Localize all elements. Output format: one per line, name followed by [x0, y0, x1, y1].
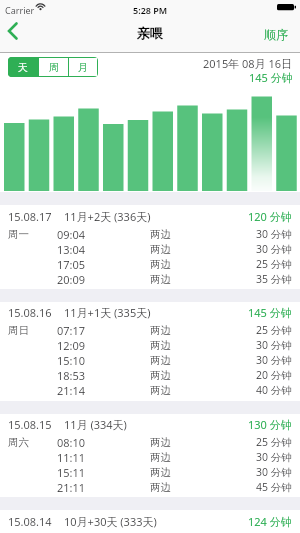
staticText: 145 分钟: [249, 70, 293, 85]
button[interactable]: [0, 353, 300, 368]
staticText: 两边: [150, 273, 171, 286]
staticText: 15.08.16: [8, 305, 52, 320]
button[interactable]: [0, 480, 300, 495]
staticText: 两边: [150, 228, 171, 241]
button[interactable]: [0, 450, 300, 465]
button[interactable]: [0, 368, 300, 383]
staticText: 30 分钟: [256, 242, 292, 256]
staticText: 20 分钟: [256, 368, 292, 382]
staticText: 30 分钟: [256, 338, 292, 352]
staticText: 两边: [150, 243, 171, 256]
staticText: 两边: [150, 466, 171, 479]
staticText: 两边: [150, 339, 171, 352]
staticText: 09:04: [57, 227, 86, 242]
staticText: 124 分钟: [248, 514, 292, 529]
staticText: 天: [18, 61, 28, 74]
staticText: 周六: [8, 436, 29, 449]
staticText: 12:09: [57, 338, 86, 353]
staticText: 两边: [150, 384, 171, 397]
staticText: 11月+1天 (335天): [64, 305, 151, 320]
staticText: 30 分钟: [256, 227, 292, 241]
staticText: 30 分钟: [256, 465, 292, 479]
button[interactable]: [0, 226, 300, 241]
staticText: 两边: [150, 436, 171, 449]
staticText: Carrier: [5, 4, 35, 16]
staticText: 周日: [8, 324, 29, 337]
button[interactable]: 顺序: [255, 24, 297, 44]
staticText: 两边: [150, 369, 171, 382]
staticText: 两边: [150, 258, 171, 271]
staticText: 21:14: [57, 383, 86, 398]
staticText: 11月+2天 (336天): [64, 209, 151, 224]
button[interactable]: [0, 256, 300, 271]
button[interactable]: [0, 465, 300, 480]
button[interactable]: [4, 22, 24, 40]
staticText: 120 分钟: [248, 209, 292, 224]
staticText: 30 分钟: [256, 450, 292, 464]
staticText: 20:09: [57, 272, 86, 287]
staticText: 30 分钟: [256, 353, 292, 367]
staticText: 13:04: [57, 242, 86, 257]
button[interactable]: 周: [39, 58, 68, 76]
staticText: 周一: [8, 228, 29, 241]
staticText: 月: [78, 61, 88, 74]
staticText: 130 分钟: [248, 417, 292, 432]
button[interactable]: [0, 435, 300, 450]
staticText: 08:10: [57, 435, 86, 450]
button[interactable]: 月: [69, 58, 97, 76]
staticText: 15.08.15: [8, 417, 52, 432]
staticText: 5:28 PM: [133, 4, 168, 16]
button[interactable]: [0, 271, 300, 286]
staticText: 07:17: [57, 323, 86, 338]
staticText: 25 分钟: [256, 435, 292, 449]
staticText: 18:53: [57, 368, 86, 383]
staticText: 15.08.14: [8, 514, 52, 529]
staticText: 顺序: [264, 27, 288, 42]
staticText: 45 分钟: [256, 480, 292, 494]
staticText: 11:11: [57, 450, 86, 465]
staticText: 35 分钟: [256, 272, 292, 286]
staticText: 17:05: [57, 257, 86, 272]
staticText: 两边: [150, 324, 171, 337]
staticText: 21:11: [57, 480, 86, 495]
staticText: 145 分钟: [248, 305, 292, 320]
staticText: 周: [49, 61, 59, 74]
staticText: 15:11: [57, 465, 86, 480]
staticText: 亲喂: [137, 25, 163, 41]
staticText: 15:10: [57, 353, 86, 368]
button[interactable]: [0, 323, 300, 338]
button[interactable]: [0, 383, 300, 398]
staticText: 25 分钟: [256, 257, 292, 271]
button[interactable]: [0, 241, 300, 256]
staticText: 25 分钟: [256, 323, 292, 337]
staticText: 10月+30天 (333天): [64, 514, 157, 529]
staticText: 两边: [150, 481, 171, 494]
button[interactable]: 天: [8, 57, 38, 77]
staticText: 15.08.17: [8, 209, 52, 224]
staticText: 2015年 08月 16日: [203, 56, 293, 71]
staticText: 两边: [150, 354, 171, 367]
staticText: 40 分钟: [256, 383, 292, 397]
staticText: 两边: [150, 451, 171, 464]
button[interactable]: [0, 338, 300, 353]
staticText: 11月 (334天): [64, 417, 127, 432]
